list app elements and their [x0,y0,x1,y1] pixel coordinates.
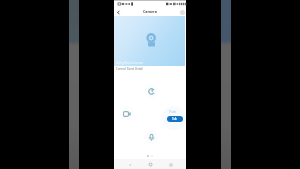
staticText: Control Panel Detail [116,67,143,71]
button[interactable]: Power [144,84,158,98]
button[interactable]: Recent apps [166,160,175,169]
button[interactable]: Back [114,8,122,16]
button[interactable]: Video [120,107,134,121]
staticText: Talk [172,117,178,121]
staticText: Camera [143,9,157,14]
staticText: Push [169,110,176,114]
button[interactable]: Back [125,160,134,169]
button[interactable]: Talk [167,116,183,122]
button[interactable]: Home [146,160,155,169]
staticText: Living Room Camera [116,61,144,65]
button[interactable]: Microphone [144,130,158,144]
button[interactable]: Settings [178,8,186,16]
